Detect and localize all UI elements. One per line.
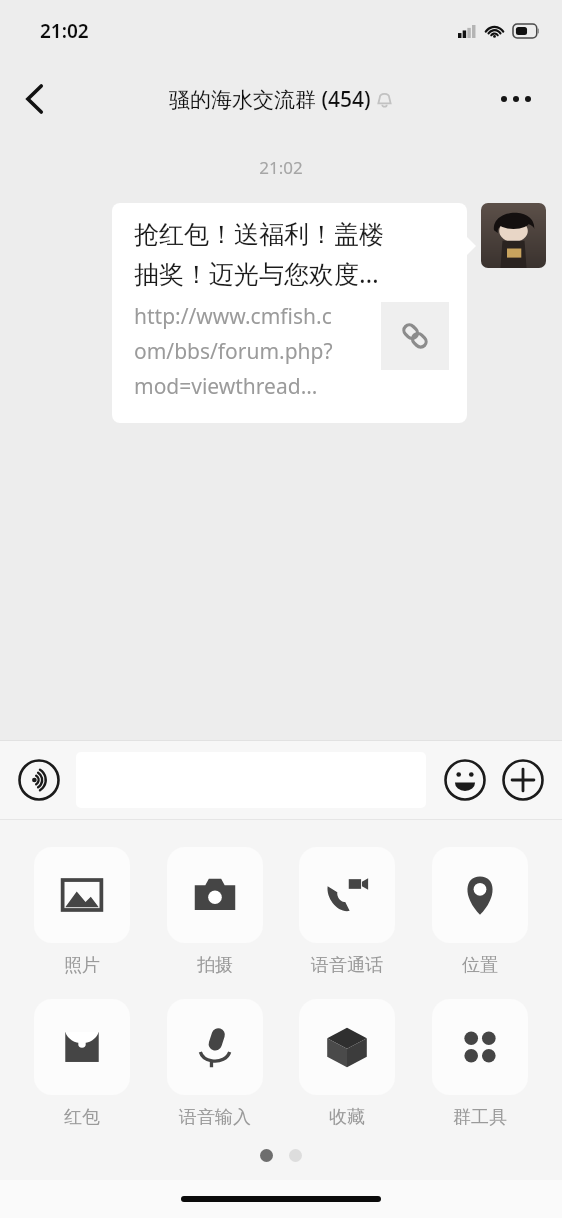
button[interactable]: 照片 xyxy=(26,847,138,977)
button[interactable]: More options xyxy=(488,73,544,125)
button[interactable]: 语音通话 xyxy=(291,847,403,977)
button[interactable]: 红包 xyxy=(26,999,138,1129)
button[interactable]: 位置 xyxy=(424,847,536,977)
button[interactable]: Avatar xyxy=(481,203,546,268)
button[interactable]: 群工具 xyxy=(424,999,536,1129)
button[interactable]: 拍摄 xyxy=(159,847,271,977)
staticText: 照片 xyxy=(64,954,100,977)
staticText: 位置 xyxy=(462,954,498,977)
staticText: 红包 xyxy=(64,1106,100,1129)
button[interactable]: Emoji xyxy=(440,755,490,805)
staticText: 抢红包！送福利！盖楼 抽奖！迈光与您欢度… xyxy=(134,219,384,290)
staticText: 语音通话 xyxy=(311,954,383,977)
staticText: 拍摄 xyxy=(197,954,233,977)
staticText: 收藏 xyxy=(329,1106,365,1129)
staticText: 骚的海水交流群 (454) xyxy=(169,85,371,114)
staticText: http://www.cmfish.c om/bbs/forum.php? mo… xyxy=(134,302,375,401)
staticText: 语音输入 xyxy=(179,1106,251,1129)
staticText: 21:02 xyxy=(0,156,562,179)
button[interactable]: 抢红包！送福利！盖楼 抽奖！迈光与您欢度… xyxy=(112,203,467,423)
staticText: 群工具 xyxy=(453,1106,507,1129)
button[interactable]: 收藏 xyxy=(291,999,403,1129)
button[interactable]: 语音输入 xyxy=(159,999,271,1129)
staticText: 21:02 xyxy=(40,18,89,44)
button[interactable]: More attachments xyxy=(498,755,548,805)
button[interactable]: Back xyxy=(8,73,60,125)
button[interactable]: Voice message xyxy=(14,755,64,805)
